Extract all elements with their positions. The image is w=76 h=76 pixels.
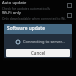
staticText: Cancel xyxy=(31,50,46,56)
button[interactable]: Cancel xyxy=(6,49,70,57)
staticText: Software update xyxy=(7,25,45,32)
staticText: Only downloadable when connected to Wi-F… xyxy=(2,17,67,20)
staticText: Wi-Fi only xyxy=(2,10,22,16)
staticText: Check for updates automatically xyxy=(2,7,51,10)
button[interactable]: Toggle Wi-Fi only xyxy=(67,13,72,18)
staticText: Connecting to server... xyxy=(23,39,65,44)
button[interactable]: Toggle Auto update xyxy=(67,3,72,8)
staticText: Auto update xyxy=(2,0,27,6)
button[interactable]: Wi-Fi only xyxy=(2,10,72,20)
button[interactable]: Auto update xyxy=(2,0,72,10)
